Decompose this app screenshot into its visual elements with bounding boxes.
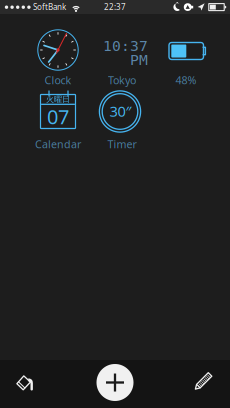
- button[interactable]: Fill: [0, 359, 53, 407]
- staticText: Clock: [44, 73, 71, 87]
- button[interactable]: Clock: [26, 27, 90, 91]
- staticText: Tokyo: [108, 73, 136, 87]
- button[interactable]: 10:37: [90, 27, 154, 91]
- button[interactable]: 30″: [90, 91, 154, 155]
- staticText: 火曜日: [46, 94, 70, 104]
- staticText: 22:37: [104, 2, 126, 12]
- staticText: 30″: [109, 101, 131, 121]
- staticText: 07: [47, 103, 69, 130]
- button[interactable]: 48%: [154, 27, 218, 91]
- button[interactable]: Edit: [176, 357, 230, 405]
- staticText: 10:37: [103, 38, 148, 54]
- button[interactable]: Add: [85, 358, 145, 406]
- staticText: 48%: [175, 73, 196, 87]
- staticText: SoftBank: [33, 2, 66, 12]
- staticText: Calendar: [35, 137, 81, 151]
- button[interactable]: 火曜日: [26, 91, 90, 155]
- staticText: Timer: [107, 137, 136, 151]
- staticText: PM: [130, 52, 148, 68]
